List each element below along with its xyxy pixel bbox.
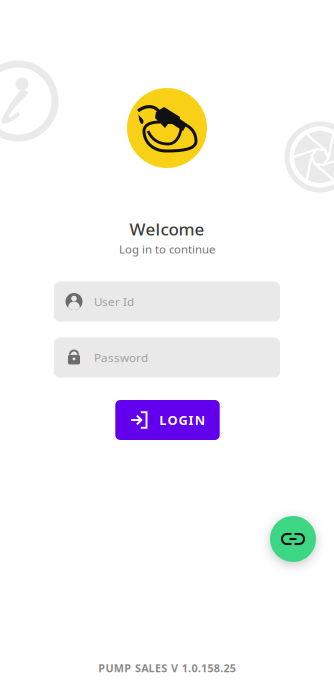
button[interactable]: LOGIN (115, 400, 220, 440)
staticText: LOGIN (159, 411, 205, 429)
staticText: User Id (94, 294, 134, 309)
staticText: Welcome (129, 217, 204, 241)
button[interactable]: User Id (54, 281, 280, 321)
staticText: Password (94, 350, 148, 365)
button[interactable]: Password (54, 337, 280, 377)
button[interactable]: Link (270, 516, 316, 562)
staticText: PUMP SALES V 1.0.158.25 (98, 661, 236, 675)
staticText: Log in to continue (119, 241, 215, 257)
